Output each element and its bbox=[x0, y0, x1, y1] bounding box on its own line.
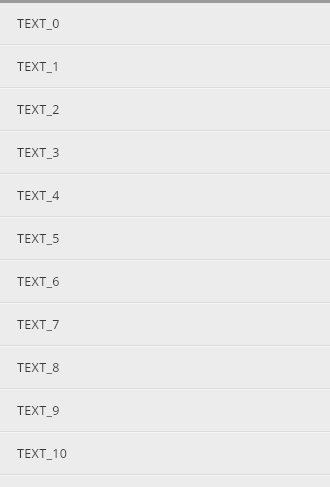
staticText: TEXT_1 bbox=[17, 58, 60, 75]
staticText: TEXT_8 bbox=[17, 359, 60, 376]
staticText: TEXT_9 bbox=[17, 402, 60, 419]
button[interactable]: TEXT_0 bbox=[0, 3, 330, 44]
button[interactable]: TEXT_7 bbox=[0, 304, 330, 345]
staticText: TEXT_3 bbox=[17, 144, 60, 161]
staticText: TEXT_5 bbox=[17, 230, 60, 247]
button[interactable]: TEXT_3 bbox=[0, 132, 330, 173]
button[interactable]: TEXT_1 bbox=[0, 46, 330, 87]
staticText: TEXT_0 bbox=[17, 15, 60, 32]
button[interactable]: TEXT_2 bbox=[0, 89, 330, 130]
staticText: TEXT_4 bbox=[17, 187, 60, 204]
staticText: TEXT_6 bbox=[17, 273, 60, 290]
staticText: TEXT_2 bbox=[17, 101, 60, 118]
button[interactable]: TEXT_8 bbox=[0, 347, 330, 388]
button[interactable]: TEXT_6 bbox=[0, 261, 330, 302]
button[interactable]: TEXT_5 bbox=[0, 218, 330, 259]
button[interactable]: TEXT_10 bbox=[0, 433, 330, 474]
staticText: TEXT_7 bbox=[17, 316, 60, 333]
button[interactable]: TEXT_4 bbox=[0, 175, 330, 216]
staticText: TEXT_10 bbox=[17, 445, 68, 462]
button[interactable]: TEXT_9 bbox=[0, 390, 330, 431]
